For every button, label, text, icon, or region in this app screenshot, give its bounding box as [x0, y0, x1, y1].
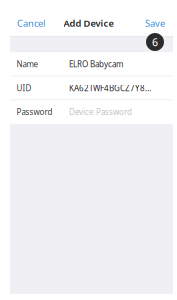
button[interactable]: 6 devices [146, 33, 164, 51]
staticText: Password [16, 107, 52, 117]
staticText: Name [16, 59, 38, 69]
button[interactable]: Password [10, 100, 173, 124]
button[interactable]: Cancel [15, 14, 47, 32]
button[interactable]: Name [10, 52, 173, 76]
staticText: Save [145, 17, 165, 29]
button[interactable]: Save [143, 14, 167, 32]
staticText: ELRO Babycam [69, 59, 123, 69]
staticText: KA62TWF4BGCZ7Y8… [69, 83, 151, 93]
staticText: Device Password [69, 107, 132, 117]
staticText: Add Device [63, 17, 113, 29]
button[interactable]: UID [10, 76, 173, 100]
staticText: Cancel [17, 17, 45, 29]
staticText: UID [16, 83, 31, 93]
staticText: 6 [152, 35, 158, 49]
